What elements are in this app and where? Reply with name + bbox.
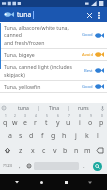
- button[interactable]: Tuna, yellowfin: [0, 81, 107, 93]
- button[interactable]: 2: [10, 113, 20, 128]
- button[interactable]: .: [79, 158, 89, 174]
- staticText: g: [51, 131, 56, 141]
- staticText: Good: [82, 84, 93, 90]
- staticText: x: [31, 146, 35, 156]
- staticText: d: [29, 131, 34, 141]
- button[interactable]: Tuna, bigeye: [0, 49, 107, 61]
- staticText: 1: [5, 114, 7, 118]
- staticText: 7: [68, 114, 70, 118]
- button[interactable]: App logo: [3, 9, 14, 20]
- staticText: Tina: [49, 105, 59, 112]
- staticText: tuna: [17, 10, 32, 19]
- staticText: v: [53, 146, 57, 156]
- button[interactable]: b: [60, 143, 71, 158]
- staticText: r: [34, 118, 37, 128]
- button[interactable]: runs: [69, 103, 98, 113]
- staticText: Tuna, bigeye: [4, 51, 35, 58]
- staticText: e: [23, 118, 27, 128]
- staticText: u: [66, 118, 71, 128]
- button[interactable]: 5: [41, 113, 52, 128]
- staticText: 6: [57, 114, 59, 118]
- button[interactable]: n: [71, 143, 82, 158]
- button[interactable]: d: [26, 128, 37, 143]
- button[interactable]: 0: [96, 113, 107, 128]
- staticText: Best: [84, 68, 93, 74]
- staticText: runs: [78, 105, 89, 112]
- staticText: and fresh/frozen: [4, 39, 45, 46]
- button[interactable]: z: [15, 143, 27, 158]
- staticText: a: [8, 131, 12, 141]
- button[interactable]: f: [37, 128, 48, 143]
- staticText: Good: [82, 32, 93, 38]
- button[interactable]: Voice input: [98, 103, 107, 113]
- button[interactable]: Tina: [39, 103, 68, 113]
- button[interactable]: k: [81, 128, 92, 143]
- button[interactable]: Back: [10, 175, 24, 189]
- staticText: 0: [101, 114, 103, 118]
- staticText: z: [19, 146, 23, 156]
- staticText: s: [19, 131, 23, 141]
- button[interactable]: ?123: [0, 158, 15, 174]
- staticText: y: [56, 118, 60, 128]
- button[interactable]: Tuna, canned light (includes: [0, 61, 107, 81]
- button[interactable]: Backspace: [93, 143, 107, 158]
- button[interactable]: Emoji: [24, 158, 34, 174]
- button[interactable]: Hide keyboard: [83, 175, 97, 189]
- staticText: tuna: [18, 105, 29, 112]
- button[interactable]: l: [92, 128, 103, 143]
- staticText: p: [99, 118, 104, 128]
- button[interactable]: 4: [30, 113, 41, 128]
- button[interactable]: 9: [85, 113, 96, 128]
- button[interactable]: More options: [94, 10, 104, 20]
- staticText: ,: [19, 162, 21, 170]
- staticText: h: [62, 131, 67, 141]
- staticText: l: [97, 131, 99, 141]
- button[interactable]: ,: [15, 158, 24, 174]
- staticText: 2: [14, 114, 16, 118]
- staticText: k: [85, 131, 89, 141]
- staticText: f: [41, 131, 44, 141]
- staticText: ?123: [3, 163, 13, 169]
- staticText: skipjack): [4, 71, 25, 78]
- button[interactable]: Search: [89, 158, 106, 174]
- button[interactable]: Expand toolbar: [0, 103, 8, 113]
- button[interactable]: Shift: [0, 143, 15, 158]
- staticText: t: [45, 118, 48, 128]
- button[interactable]: Tuna, albacore/white tuna, canned: [0, 22, 107, 49]
- staticText: Tuna, canned light (includes: [4, 63, 72, 70]
- staticText: n: [74, 146, 79, 156]
- button[interactable]: Home: [34, 175, 48, 189]
- staticText: 9: [90, 114, 92, 118]
- button[interactable]: 6: [52, 113, 63, 128]
- staticText: .: [83, 162, 85, 170]
- staticText: Tuna, yellowfin: [4, 83, 41, 90]
- button[interactable]: s: [15, 128, 26, 143]
- staticText: q: [3, 118, 8, 128]
- staticText: Avoid: [82, 52, 93, 58]
- staticText: 8: [79, 114, 81, 118]
- staticText: m: [84, 146, 91, 156]
- button[interactable]: Clear search: [84, 10, 94, 20]
- staticText: o: [88, 118, 93, 128]
- button[interactable]: x: [27, 143, 38, 158]
- staticText: Tuna, albacore/white tuna, canned: [4, 24, 80, 38]
- staticText: 4: [35, 114, 37, 118]
- button[interactable]: m: [82, 143, 93, 158]
- button[interactable]: Recents: [59, 175, 73, 189]
- button[interactable]: a: [4, 128, 15, 143]
- button[interactable]: 8: [74, 113, 85, 128]
- button[interactable]: g: [48, 128, 59, 143]
- button[interactable]: 3: [20, 113, 30, 128]
- staticText: 3: [24, 114, 26, 118]
- staticText: c: [42, 146, 46, 156]
- button[interactable]: 1: [0, 113, 10, 128]
- button[interactable]: c: [38, 143, 49, 158]
- button[interactable]: j: [70, 128, 81, 143]
- staticText: j: [75, 131, 77, 141]
- button[interactable]: v: [49, 143, 60, 158]
- button[interactable]: h: [59, 128, 70, 143]
- button[interactable]: 7: [63, 113, 74, 128]
- button[interactable]: tuna: [8, 103, 38, 113]
- staticText: i: [79, 118, 81, 128]
